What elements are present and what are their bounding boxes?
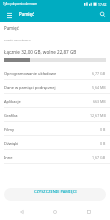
button[interactable]: Menu	[0, 8, 18, 22]
staticText: 6,77 GB	[92, 71, 106, 76]
staticText: 1,67 GB	[92, 155, 106, 160]
staticText: CZYSZCZENIE PAMIĘCI	[34, 189, 77, 194]
button[interactable]: Dane w pamięci podręcznej	[0, 80, 110, 94]
staticText: Tylko połączenia alarmowe	[3, 2, 37, 6]
staticText: PAMIĘĆ WEWNĘTRZNA	[4, 38, 31, 41]
staticText: Dane w pamięci podręcznej	[4, 85, 56, 90]
staticText: Filmy	[4, 127, 14, 132]
staticText: 0 B	[100, 127, 106, 132]
staticText: 663 MB	[93, 99, 106, 104]
staticText: 0 B	[100, 141, 106, 146]
staticText: Grafika	[4, 113, 18, 118]
staticText: Oprogramowanie układowe	[4, 71, 57, 76]
staticText: Dźwięki	[4, 141, 19, 146]
button[interactable]: Aplikacje	[0, 94, 110, 108]
staticText: Pamięć	[19, 11, 35, 17]
button[interactable]: Grafika	[0, 108, 110, 122]
button[interactable]: Oprogramowanie układowe	[0, 66, 110, 80]
button[interactable]: Ekran główny	[43, 203, 67, 220]
staticText: 5,64 MB	[92, 85, 106, 90]
staticText: Aplikacje	[4, 99, 21, 104]
staticText: Pamięć	[4, 25, 19, 31]
staticText: Łącznie 32,00 GB, wolne 22,87 GB	[4, 49, 77, 55]
button[interactable]: Ostatnie	[77, 203, 101, 220]
button[interactable]: Dźwięki	[0, 136, 110, 150]
staticText: 17:52	[98, 2, 107, 6]
button[interactable]: Inne	[0, 150, 110, 164]
button[interactable]: Szukaj	[94, 7, 110, 21]
button[interactable]: CZYSZCZENIE PAMIĘCI	[4, 188, 106, 201]
staticText: Inne	[4, 155, 13, 160]
button[interactable]: Filmy	[0, 122, 110, 136]
button[interactable]: Wstecz	[10, 203, 34, 220]
staticText: 12,67 MB	[90, 113, 106, 118]
